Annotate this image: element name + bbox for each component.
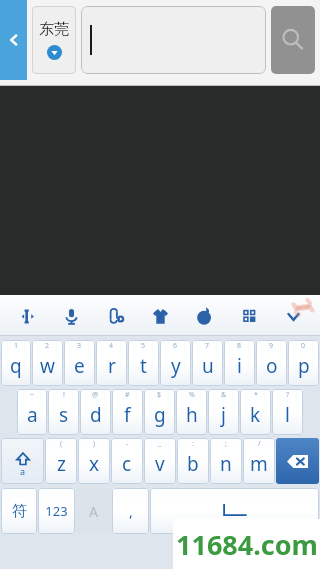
staticText: 9 — [269, 341, 274, 351]
button[interactable]: / — [243, 438, 275, 484]
staticText: @ — [92, 390, 99, 400]
button[interactable]: QR code — [232, 299, 266, 333]
staticText: q — [10, 353, 22, 379]
staticText: / — [258, 439, 261, 449]
button[interactable]: : — [177, 438, 209, 484]
staticText: y — [171, 353, 181, 379]
button[interactable]: 符 — [1, 488, 37, 534]
button[interactable]: 123 — [38, 488, 75, 534]
button[interactable]: 2 — [32, 340, 63, 386]
staticText: 123 — [45, 502, 68, 520]
staticText: s — [59, 402, 69, 428]
staticText: 11684.com — [176, 526, 318, 563]
button[interactable]: $ — [144, 389, 175, 435]
staticText: l — [285, 402, 290, 428]
staticText: ~ — [30, 390, 35, 400]
staticText: 6 — [173, 341, 178, 351]
button[interactable]: 9 — [256, 340, 287, 386]
button[interactable]: Attachment — [99, 299, 133, 333]
staticText: 3 — [77, 341, 82, 351]
staticText: ( — [60, 439, 63, 449]
button[interactable]: % — [176, 389, 207, 435]
button[interactable]: Theme — [143, 299, 177, 333]
staticText: r — [108, 353, 116, 379]
button[interactable]: Shift — [1, 438, 44, 484]
button[interactable]: A — [76, 488, 111, 534]
button[interactable]: 7 — [192, 340, 223, 386]
staticText: a — [27, 402, 38, 428]
button[interactable]: 0 — [288, 340, 319, 386]
staticText: 4 — [109, 341, 114, 351]
staticText: & — [221, 390, 227, 400]
staticText: : — [192, 439, 194, 449]
staticText: g — [154, 402, 166, 428]
staticText: m — [250, 451, 268, 477]
button[interactable]: - — [111, 438, 143, 484]
staticText: 东莞 — [39, 20, 69, 39]
button[interactable]: 东莞 — [32, 6, 76, 74]
staticText: 7 — [205, 341, 210, 351]
button[interactable]: Space — [150, 488, 319, 534]
button[interactable]: _ — [144, 438, 176, 484]
staticText: ; — [225, 439, 227, 449]
staticText: 1 — [14, 341, 19, 351]
staticText: ! — [63, 390, 65, 400]
button[interactable]: ( — [45, 438, 77, 484]
button[interactable]: & — [208, 389, 239, 435]
staticText: d — [90, 402, 102, 428]
staticText: u — [202, 353, 214, 379]
staticText: # — [125, 390, 130, 400]
button[interactable]: Hide keyboard — [276, 299, 310, 333]
button[interactable]: ) — [78, 438, 110, 484]
staticText: x — [89, 451, 100, 477]
staticText: p — [298, 353, 310, 379]
staticText: - — [126, 439, 129, 449]
staticText: ) — [93, 439, 96, 449]
staticText: _ — [158, 439, 162, 449]
button[interactable]: 4 — [96, 340, 127, 386]
button[interactable]: ? — [272, 389, 303, 435]
button[interactable]: ; — [210, 438, 242, 484]
staticText: e — [74, 353, 85, 379]
staticText: k — [250, 402, 261, 428]
staticText: j — [221, 402, 226, 428]
staticText: 8 — [237, 341, 242, 351]
button[interactable]: Voice input — [54, 299, 88, 333]
button[interactable]: Dictionary — [187, 299, 221, 333]
staticText: v — [155, 451, 165, 477]
staticText: $ — [157, 390, 162, 400]
button[interactable]: * — [240, 389, 271, 435]
button[interactable] — [81, 6, 266, 74]
staticText: c — [122, 451, 132, 477]
staticText: 2 — [45, 341, 50, 351]
button[interactable]: 8 — [224, 340, 255, 386]
button[interactable]: ~ — [17, 389, 47, 435]
staticText: t — [140, 353, 147, 379]
button[interactable]: 1 — [1, 340, 31, 386]
button[interactable]: 5 — [128, 340, 159, 386]
staticText: i — [237, 353, 242, 379]
staticText: 5 — [141, 341, 146, 351]
button[interactable]: Search — [271, 6, 315, 74]
button[interactable]: 3 — [64, 340, 95, 386]
staticText: o — [266, 353, 278, 379]
button[interactable]: Backspace — [276, 438, 319, 484]
staticText: h — [186, 402, 198, 428]
staticText: w — [40, 353, 55, 379]
button[interactable]: 6 — [160, 340, 191, 386]
button[interactable]: # — [112, 389, 143, 435]
button[interactable]: ! — [48, 389, 79, 435]
staticText: , — [129, 502, 133, 521]
staticText: b — [187, 451, 199, 477]
button[interactable]: @ — [80, 389, 111, 435]
staticText: % — [189, 390, 195, 400]
button[interactable]: Move cursor — [10, 299, 44, 333]
button[interactable]: Back — [0, 0, 27, 80]
staticText: ? — [286, 390, 290, 400]
staticText: * — [254, 390, 258, 400]
staticText: 0 — [301, 341, 306, 351]
staticText: A — [89, 502, 98, 521]
button[interactable]: , — [112, 488, 149, 534]
staticText: a — [20, 465, 26, 477]
staticText: z — [57, 451, 66, 477]
